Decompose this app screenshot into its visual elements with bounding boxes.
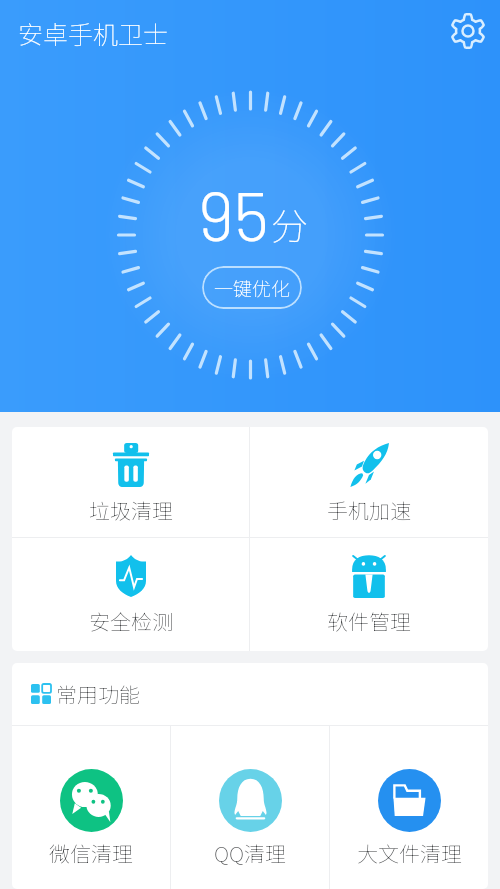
button[interactable]: 安全检测 [12, 538, 249, 651]
button[interactable]: QQ清理 [171, 726, 329, 889]
staticText: 分 [271, 197, 308, 251]
button[interactable]: 大文件清理 [330, 726, 488, 889]
button[interactable]: 一键优化 [202, 266, 302, 309]
button[interactable]: 手机加速 [250, 427, 488, 537]
button[interactable]: Settings [446, 12, 490, 56]
button[interactable]: 软件管理 [250, 538, 488, 651]
staticText: 95 [198, 172, 269, 255]
staticText: 大文件清理 [357, 838, 462, 868]
button[interactable]: 微信清理 [12, 726, 170, 889]
staticText: 垃圾清理 [89, 495, 173, 525]
staticText: 微信清理 [49, 838, 133, 868]
staticText: 手机加速 [327, 495, 411, 525]
staticText: 安全检测 [89, 606, 173, 636]
staticText: 一键优化 [214, 274, 291, 302]
staticText: QQ清理 [214, 838, 286, 868]
staticText: 软件管理 [327, 606, 411, 636]
staticText: 安卓手机卫士 [18, 15, 169, 51]
staticText: 常用功能 [56, 679, 140, 709]
button[interactable]: 垃圾清理 [12, 427, 249, 537]
